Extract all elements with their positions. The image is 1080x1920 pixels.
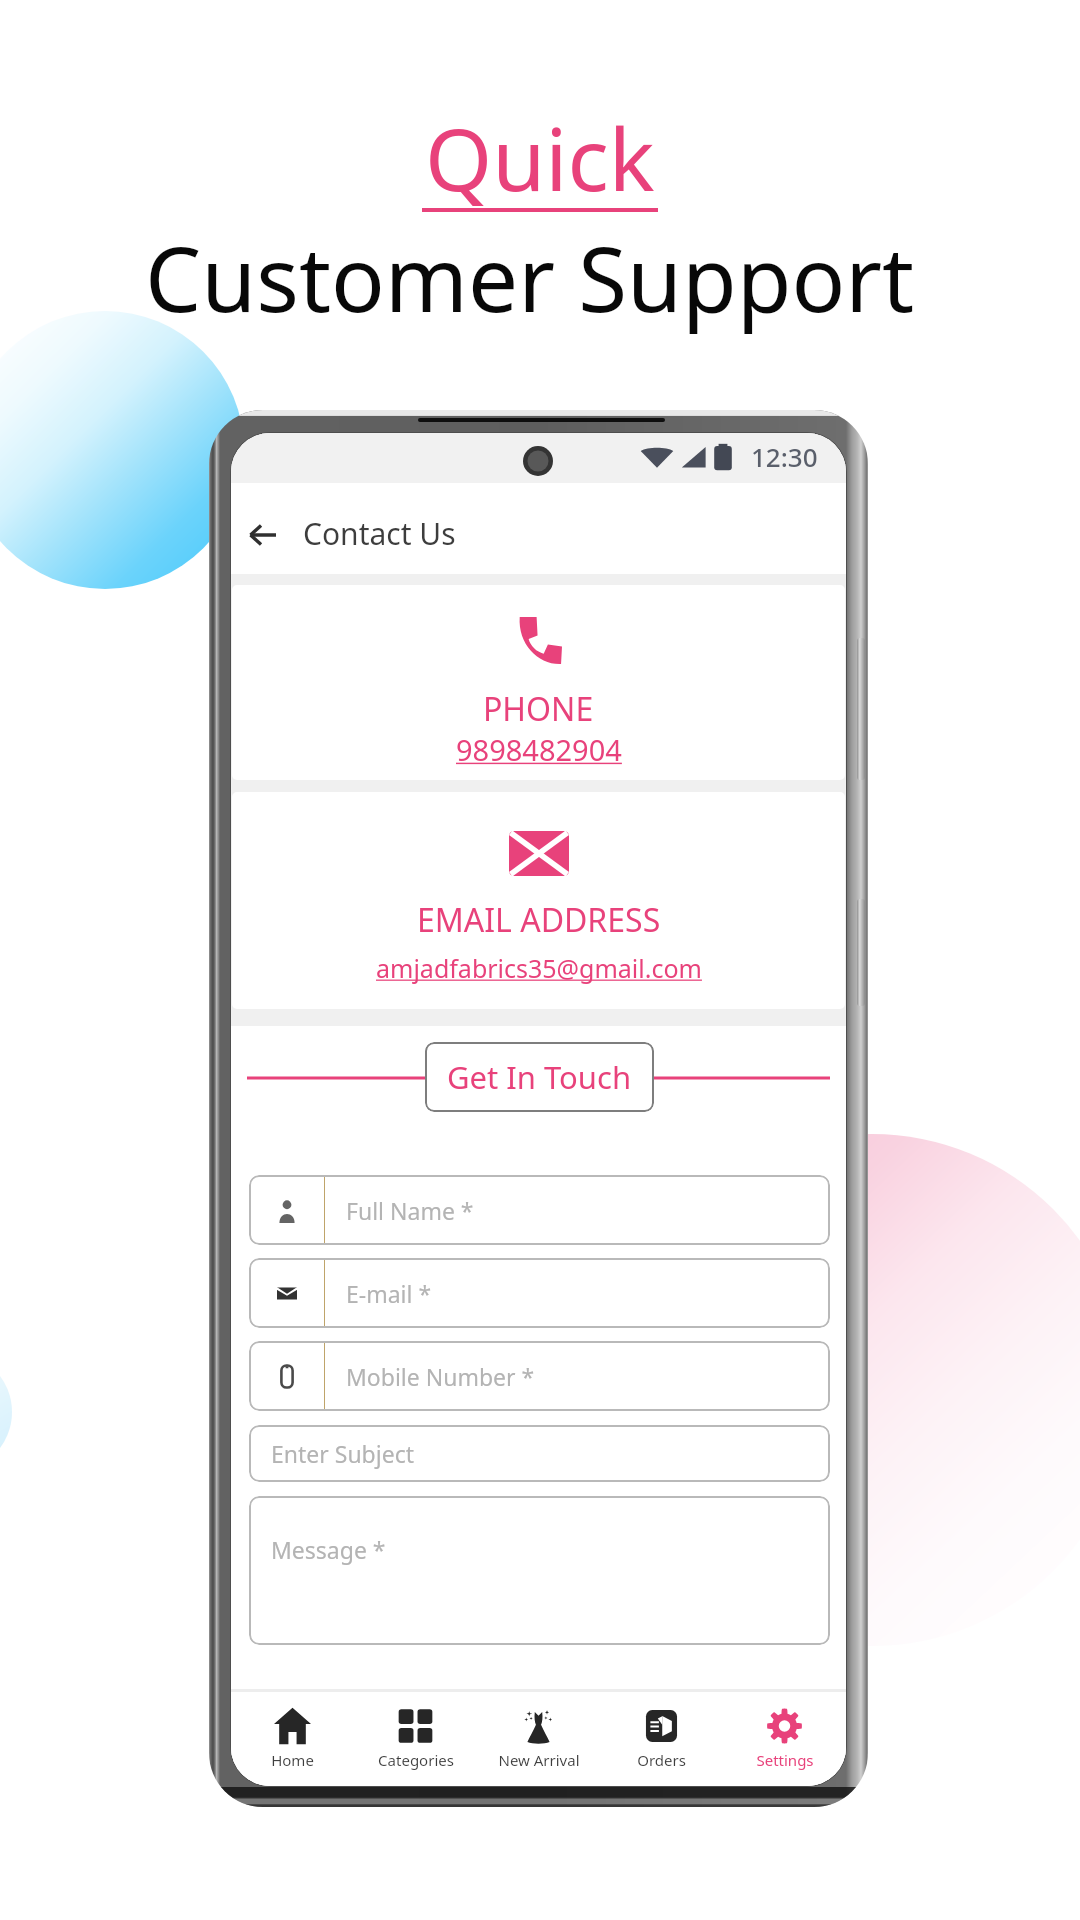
staticText: Categories bbox=[378, 1750, 454, 1770]
staticText: 12:30 bbox=[751, 439, 818, 474]
staticText: Mobile Number * bbox=[346, 1361, 535, 1392]
button[interactable]: Enter Subject bbox=[249, 1425, 830, 1482]
staticText: 9898482904 bbox=[456, 730, 622, 769]
staticText: Settings bbox=[756, 1750, 814, 1770]
staticText: New Arrival bbox=[498, 1750, 580, 1770]
button[interactable]: Message * bbox=[249, 1496, 830, 1645]
button[interactable]: PHONE bbox=[232, 585, 845, 780]
staticText: amjadfabrics35@gmail.com bbox=[376, 951, 702, 985]
staticText: Enter Subject bbox=[271, 1438, 414, 1469]
staticText: Customer Support bbox=[145, 217, 915, 338]
button[interactable]: Get In Touch bbox=[425, 1042, 654, 1112]
button[interactable]: EMAIL ADDRESS bbox=[232, 792, 845, 1009]
button[interactable]: E-mail * bbox=[249, 1258, 830, 1328]
staticText: E-mail * bbox=[346, 1278, 432, 1309]
staticText: Home bbox=[271, 1750, 314, 1770]
button[interactable]: Orders bbox=[600, 1692, 723, 1786]
button[interactable]: Categories bbox=[354, 1692, 477, 1786]
staticText: Quick bbox=[425, 99, 655, 216]
staticText: Message * bbox=[271, 1534, 386, 1565]
staticText: PHONE bbox=[483, 687, 594, 731]
staticText: Contact Us bbox=[303, 513, 456, 554]
staticText: Full Name * bbox=[346, 1195, 474, 1226]
staticText: Get In Touch bbox=[447, 1056, 632, 1098]
button[interactable]: New Arrival bbox=[477, 1692, 600, 1786]
button[interactable]: Mobile Number * bbox=[249, 1341, 830, 1411]
staticText: EMAIL ADDRESS bbox=[417, 898, 661, 942]
button[interactable]: Home bbox=[231, 1692, 354, 1786]
staticText: Orders bbox=[637, 1750, 686, 1770]
button[interactable]: Back bbox=[237, 509, 289, 561]
button[interactable]: Full Name * bbox=[249, 1175, 830, 1245]
button[interactable]: Settings bbox=[723, 1692, 846, 1786]
